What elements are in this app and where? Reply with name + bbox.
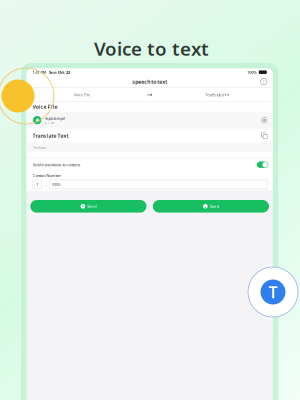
staticText: — (44, 182, 48, 187)
staticText: Voice to text (94, 36, 209, 61)
staticText: Voice File (32, 103, 57, 110)
staticText: speech to text (132, 78, 167, 85)
staticText: Translate Text (32, 132, 68, 139)
staticText: Contact Number (32, 173, 61, 178)
button[interactable]: Send (153, 200, 269, 213)
staticText: → (147, 91, 153, 98)
staticText: 1:41 PM (32, 69, 46, 75)
staticText: Send (87, 204, 96, 209)
staticText: Sun Oct 22 (49, 69, 70, 75)
staticText: T (268, 281, 277, 303)
button[interactable]: Help (259, 77, 269, 87)
staticText: 100% (247, 69, 256, 75)
staticText: 4.2 MB (44, 121, 54, 125)
staticText: 1 (36, 182, 38, 187)
staticText: Text(English) ▾ (205, 92, 229, 97)
button[interactable]: Copy text (260, 131, 269, 140)
button[interactable]: Send translations to contacts (26, 158, 273, 171)
staticText: (555) (52, 182, 60, 187)
button[interactable]: Voice File (26, 92, 138, 97)
staticText: Send (210, 204, 219, 209)
button[interactable]: Stop playback (260, 116, 269, 125)
staticText: Yeshwa (33, 145, 46, 150)
staticText: ? (263, 79, 265, 84)
button[interactable]: Swap languages (138, 91, 162, 98)
staticText: mp3-4.mp3 (44, 116, 64, 121)
button[interactable]: Send (30, 200, 146, 213)
button[interactable]: Text(English) ▾ (162, 92, 273, 97)
staticText: Send translations to contacts (32, 162, 80, 167)
staticText: Voice File (74, 92, 90, 97)
